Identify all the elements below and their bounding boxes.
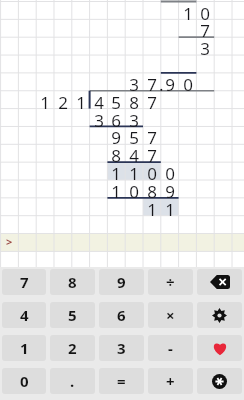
staticText: 3 — [129, 73, 139, 91]
staticText: 6 — [117, 305, 126, 325]
staticText: . — [159, 73, 164, 91]
button[interactable]: Settings — [197, 302, 242, 328]
staticText: = — [117, 371, 126, 391]
staticText: 0 — [20, 371, 29, 391]
staticText: 7 — [147, 91, 157, 109]
staticText: 4 — [129, 144, 139, 162]
button[interactable]: . — [50, 368, 95, 394]
staticText: 7 — [200, 19, 210, 37]
staticText: . — [70, 371, 75, 391]
staticText: 4 — [94, 91, 104, 109]
button[interactable]: 1 — [2, 335, 46, 361]
staticText: 5 — [129, 126, 139, 144]
button[interactable]: 3 — [99, 335, 144, 361]
button[interactable]: + — [148, 368, 193, 394]
button[interactable]: 4 — [2, 302, 46, 328]
staticText: 1 — [147, 198, 157, 216]
staticText: 9 — [111, 126, 121, 144]
staticText: 9 — [117, 272, 126, 292]
staticText: 1 — [40, 91, 50, 109]
button[interactable]: 6 — [99, 302, 144, 328]
button[interactable]: = — [99, 368, 144, 394]
staticText: 0 — [129, 180, 139, 198]
staticText: 0 — [183, 73, 193, 91]
button[interactable]: Favourite — [197, 335, 242, 361]
button[interactable]: Backspace — [197, 269, 242, 295]
staticText: × — [166, 305, 175, 325]
staticText: 9 — [165, 73, 175, 91]
staticText: 0 — [147, 162, 157, 180]
staticText: 9 — [165, 180, 175, 198]
button[interactable]: 8 — [50, 269, 95, 295]
staticText: - — [168, 338, 173, 358]
staticText: 8 — [111, 144, 121, 162]
button[interactable]: ÷ — [148, 269, 193, 295]
button[interactable]: 7 — [2, 269, 46, 295]
staticText: > — [6, 234, 13, 248]
staticText: 3 — [94, 109, 104, 127]
button[interactable]: 0 — [2, 368, 46, 394]
staticText: 8 — [147, 180, 157, 198]
staticText: 3 — [129, 109, 139, 127]
staticText: 3 — [200, 37, 210, 55]
staticText: 8 — [129, 91, 139, 109]
staticText: 8 — [68, 272, 77, 292]
button[interactable]: Clear — [197, 368, 242, 394]
staticText: 7 — [147, 126, 157, 144]
staticText: 4 — [20, 305, 29, 325]
staticText: 6 — [111, 109, 121, 127]
staticText: 1 — [111, 162, 121, 180]
staticText: + — [166, 371, 175, 391]
staticText: 7 — [147, 144, 157, 162]
staticText: 3 — [117, 338, 126, 358]
staticText: 5 — [111, 91, 121, 109]
staticText: 1 — [111, 180, 121, 198]
button[interactable]: 2 — [50, 335, 95, 361]
staticText: 2 — [68, 338, 77, 358]
button[interactable]: - — [148, 335, 193, 361]
button[interactable]: 9 — [99, 269, 144, 295]
staticText: ÷ — [166, 272, 175, 292]
button[interactable]: × — [148, 302, 193, 328]
staticText: 1 — [129, 162, 139, 180]
staticText: 2 — [58, 91, 68, 109]
staticText: 7 — [20, 272, 29, 292]
button[interactable]: 5 — [50, 302, 95, 328]
staticText: 1 — [20, 338, 29, 358]
staticText: 0 — [165, 162, 175, 180]
staticText: 5 — [68, 305, 77, 325]
staticText: 7 — [147, 73, 157, 91]
staticText: 1 — [183, 2, 193, 20]
staticText: 1 — [76, 91, 86, 109]
staticText: 1 — [165, 198, 175, 216]
staticText: 0 — [200, 2, 210, 20]
